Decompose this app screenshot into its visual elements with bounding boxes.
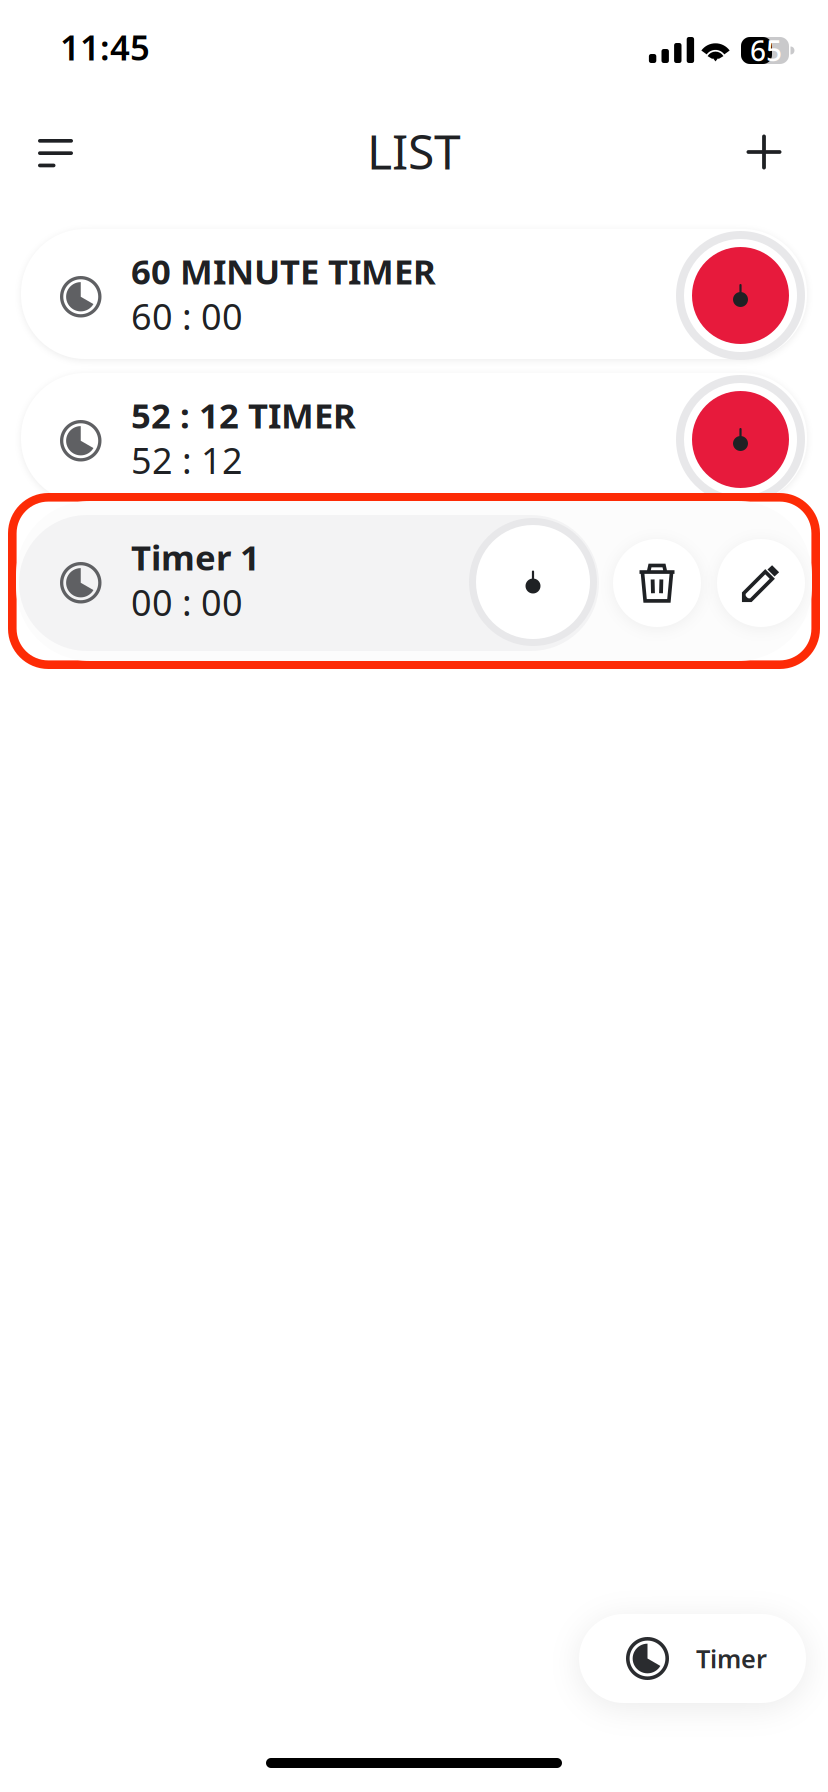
button[interactable]: Menu [17,114,93,192]
button[interactable]: Delete timer [613,539,701,627]
staticText: 65 [750,32,782,69]
staticText: 52 : 12 [131,436,243,484]
button[interactable]: Timer [579,1614,806,1703]
button[interactable]: Start timer [469,518,597,646]
staticText: 00 : 00 [131,578,243,626]
button[interactable] [8,493,820,669]
staticText: LIST [367,119,461,183]
staticText: 60 MINUTE TIMER [131,248,436,294]
button[interactable] [21,229,807,359]
staticText: 52 : 12 TIMER [131,392,356,438]
button[interactable]: Stop timer [676,231,805,360]
staticText: 11:45 [60,24,150,70]
button[interactable]: Edit timer [717,539,805,627]
staticText: Timer 1 [131,534,260,580]
staticText: 60 : 00 [131,292,243,340]
staticText: Timer [696,1642,767,1675]
button[interactable]: Add timer [726,114,802,190]
button[interactable]: Stop timer [676,375,805,504]
button[interactable] [21,373,807,503]
